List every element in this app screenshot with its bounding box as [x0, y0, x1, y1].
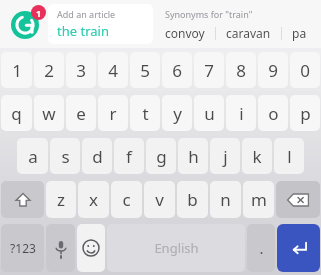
button[interactable]: 9 [258, 52, 288, 88]
button[interactable]: Grammarly [4, 2, 48, 46]
staticText: 7 [204, 59, 214, 82]
staticText: e [76, 102, 86, 125]
staticText: v [155, 188, 164, 211]
staticText: 0 [300, 59, 310, 82]
button[interactable]: i [226, 95, 256, 131]
staticText: 3 [76, 59, 86, 82]
button[interactable]: . [247, 224, 275, 272]
staticText: . [259, 238, 264, 258]
staticText: d [92, 145, 103, 168]
button[interactable]: g [146, 138, 176, 174]
staticText: the train [57, 22, 109, 40]
staticText: Synonyms for "train" [165, 8, 253, 20]
staticText: English [154, 239, 199, 257]
button[interactable]: 6 [162, 52, 192, 88]
button[interactable]: e [66, 95, 96, 131]
staticText: 6 [172, 59, 182, 82]
button[interactable]: v [144, 181, 175, 218]
button[interactable]: y [162, 95, 192, 131]
staticText: c [122, 188, 131, 211]
button[interactable]: 4 [98, 52, 128, 88]
button[interactable]: o [258, 95, 288, 131]
button[interactable]: c [111, 181, 142, 218]
button[interactable]: s [50, 138, 80, 174]
staticText: a [28, 145, 38, 168]
button[interactable]: l [274, 138, 304, 174]
button[interactable]: 3 [66, 52, 96, 88]
button[interactable]: Add an article [48, 4, 153, 44]
button[interactable]: 2 [34, 52, 64, 88]
staticText: Add an article [57, 8, 116, 20]
staticText: 1 [36, 7, 42, 19]
button[interactable]: m [243, 181, 274, 218]
staticText: caravan [226, 25, 271, 41]
staticText: 2 [44, 59, 54, 82]
button[interactable]: d [82, 138, 112, 174]
button[interactable]: n [210, 181, 241, 218]
button[interactable]: j [210, 138, 240, 174]
button[interactable]: 1 [1, 52, 32, 88]
button[interactable]: convoy [165, 25, 205, 41]
staticText: x [89, 188, 98, 211]
button[interactable]: Shift [1, 181, 44, 218]
button[interactable]: Backspace [276, 181, 320, 218]
button[interactable]: pa [292, 25, 307, 41]
staticText: u [204, 102, 215, 125]
button[interactable]: caravan [226, 25, 271, 41]
button[interactable]: t [130, 95, 160, 131]
staticText: convoy [165, 25, 205, 41]
button[interactable]: Voice input [46, 224, 75, 272]
staticText: pa [292, 25, 307, 41]
staticText: z [57, 188, 65, 211]
staticText: i [239, 102, 244, 125]
staticText: k [252, 145, 262, 168]
staticText: h [188, 145, 199, 168]
staticText: ?123 [10, 240, 36, 256]
staticText: l [287, 145, 292, 168]
staticText: 1 [12, 59, 22, 82]
staticText: 9 [268, 59, 278, 82]
staticText: j [223, 145, 228, 168]
button[interactable]: Enter [277, 224, 320, 272]
button[interactable]: ?123 [1, 224, 44, 272]
button[interactable]: 5 [130, 52, 160, 88]
button[interactable]: x [78, 181, 109, 218]
button[interactable]: u [194, 95, 224, 131]
staticText: 4 [108, 59, 118, 82]
button[interactable]: q [1, 95, 32, 131]
button[interactable]: English [107, 224, 245, 272]
button[interactable]: f [114, 138, 144, 174]
staticText: r [109, 102, 117, 125]
staticText: o [268, 102, 279, 125]
button[interactable]: 7 [194, 52, 224, 88]
staticText: p [300, 102, 311, 125]
staticText: 5 [140, 59, 150, 82]
button[interactable]: w [34, 95, 64, 131]
staticText: t [142, 102, 149, 125]
staticText: s [61, 145, 70, 168]
staticText: q [11, 102, 22, 125]
button[interactable]: b [177, 181, 208, 218]
staticText: y [173, 102, 182, 125]
staticText: 8 [236, 59, 246, 82]
staticText: n [220, 188, 231, 211]
button[interactable]: p [290, 95, 320, 131]
button[interactable]: 8 [226, 52, 256, 88]
button[interactable]: r [98, 95, 128, 131]
staticText: g [156, 145, 167, 168]
staticText: b [187, 188, 198, 211]
staticText: w [42, 102, 56, 125]
button[interactable]: 0 [290, 52, 320, 88]
staticText: f [126, 145, 132, 168]
button[interactable]: Emoji [77, 224, 105, 272]
button[interactable]: h [178, 138, 208, 174]
button[interactable]: a [17, 138, 48, 174]
staticText: m [251, 188, 267, 211]
button[interactable]: k [242, 138, 272, 174]
button[interactable]: z [46, 181, 76, 218]
